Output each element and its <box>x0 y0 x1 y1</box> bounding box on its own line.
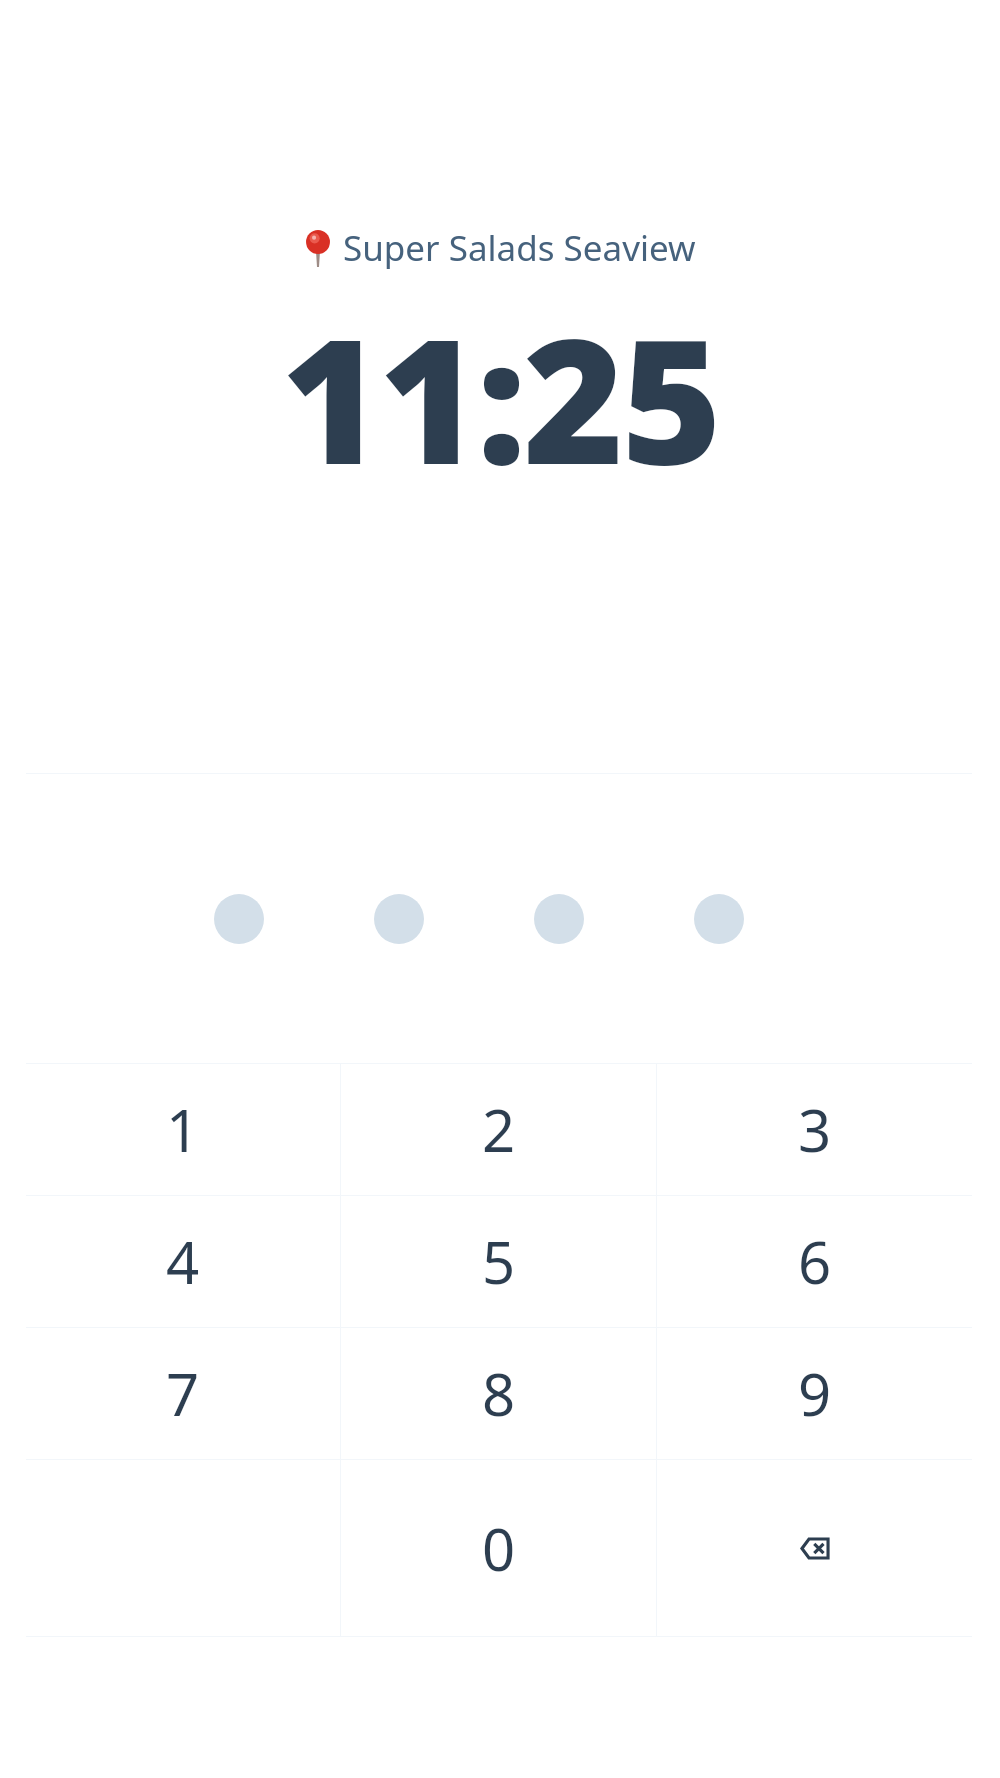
button[interactable]: 2 <box>341 1064 656 1195</box>
staticText: 9 <box>798 1354 832 1433</box>
staticText: 7 <box>166 1354 200 1433</box>
button[interactable]: 6 <box>657 1196 972 1327</box>
button[interactable]: 7 <box>26 1328 340 1459</box>
staticText: 5 <box>482 1222 516 1301</box>
staticText: 0 <box>482 1509 516 1588</box>
staticText: 1 <box>166 1090 200 1169</box>
staticText: 3 <box>798 1090 832 1169</box>
staticText: Super Salads Seaview <box>343 224 696 272</box>
staticText: 4 <box>166 1222 200 1301</box>
staticText: 6 <box>798 1222 832 1301</box>
staticText: 11:25 <box>0 280 1000 514</box>
button[interactable]: 9 <box>657 1328 972 1459</box>
button[interactable]: Backspace <box>657 1460 972 1636</box>
button[interactable]: 1 <box>26 1064 340 1195</box>
button[interactable]: 3 <box>657 1064 972 1195</box>
button[interactable]: 0 <box>341 1460 656 1636</box>
staticText: 2 <box>482 1090 516 1169</box>
button[interactable]: 4 <box>26 1196 340 1327</box>
staticText: 8 <box>482 1354 516 1433</box>
button[interactable]: 5 <box>341 1196 656 1327</box>
button[interactable]: 8 <box>341 1328 656 1459</box>
